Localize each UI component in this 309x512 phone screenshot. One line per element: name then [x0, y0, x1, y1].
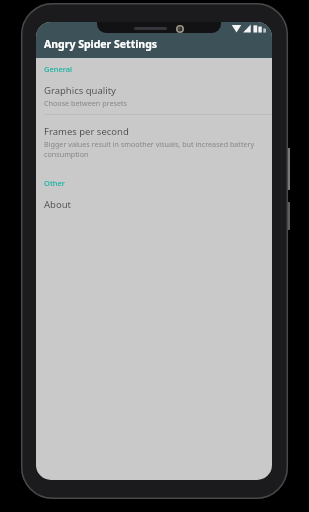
- staticText: Graphics quality: [44, 84, 116, 97]
- staticText: Frames per second: [44, 125, 129, 138]
- staticText: Bigger values result in smoother visuals…: [44, 139, 266, 159]
- staticText: Choose between presets: [44, 98, 128, 108]
- staticText: About: [44, 198, 71, 211]
- button[interactable]: About: [36, 193, 272, 217]
- button[interactable]: Frames per second: [36, 120, 272, 165]
- button[interactable]: Graphics quality: [36, 79, 272, 114]
- staticText: Angry Spider Settings: [44, 37, 158, 51]
- staticText: General: [44, 64, 272, 74]
- staticText: Other: [44, 178, 272, 188]
